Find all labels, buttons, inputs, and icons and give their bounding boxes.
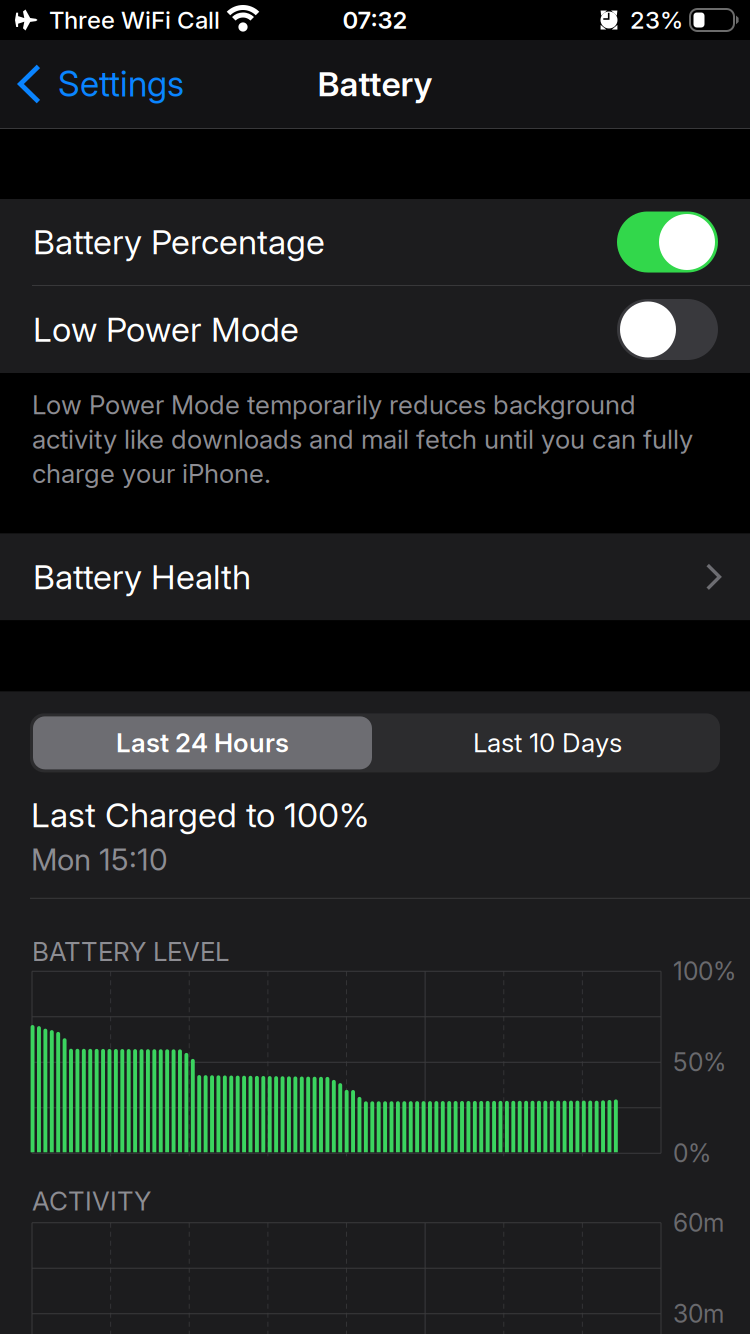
staticText: 23%: [630, 5, 683, 34]
staticText: Battery: [317, 63, 432, 104]
staticText: 07:32: [342, 5, 407, 34]
staticText: 60m: [673, 1208, 724, 1238]
staticText: Battery Health: [33, 556, 251, 597]
button[interactable]: Battery Percentage: [0, 199, 750, 285]
staticText: Last 10 Days: [473, 727, 622, 759]
staticText: Battery Percentage: [33, 221, 325, 262]
staticText: Last Charged to 100%: [31, 794, 369, 835]
button[interactable]: Settings: [0, 56, 196, 112]
staticText: Settings: [58, 63, 184, 105]
button[interactable]: Last 10 Days: [375, 713, 720, 772]
staticText: Mon 15:10: [31, 841, 168, 878]
staticText: 0%: [673, 1138, 711, 1168]
staticText: 100%: [673, 956, 736, 986]
staticText: Low Power Mode temporarily reduces backg…: [32, 389, 693, 489]
button[interactable]: Battery Health: [0, 533, 750, 620]
button[interactable]: Last 24 Hours: [30, 713, 375, 772]
staticText: Last 24 Hours: [116, 727, 289, 759]
button[interactable]: Low Power Mode: [0, 286, 750, 373]
staticText: Three WiFi Call: [49, 5, 220, 34]
staticText: 30m: [673, 1299, 724, 1329]
staticText: Low Power Mode: [33, 309, 299, 350]
staticText: BATTERY LEVEL: [32, 936, 229, 967]
staticText: ACTIVITY: [32, 1185, 151, 1217]
staticText: 50%: [673, 1047, 726, 1077]
